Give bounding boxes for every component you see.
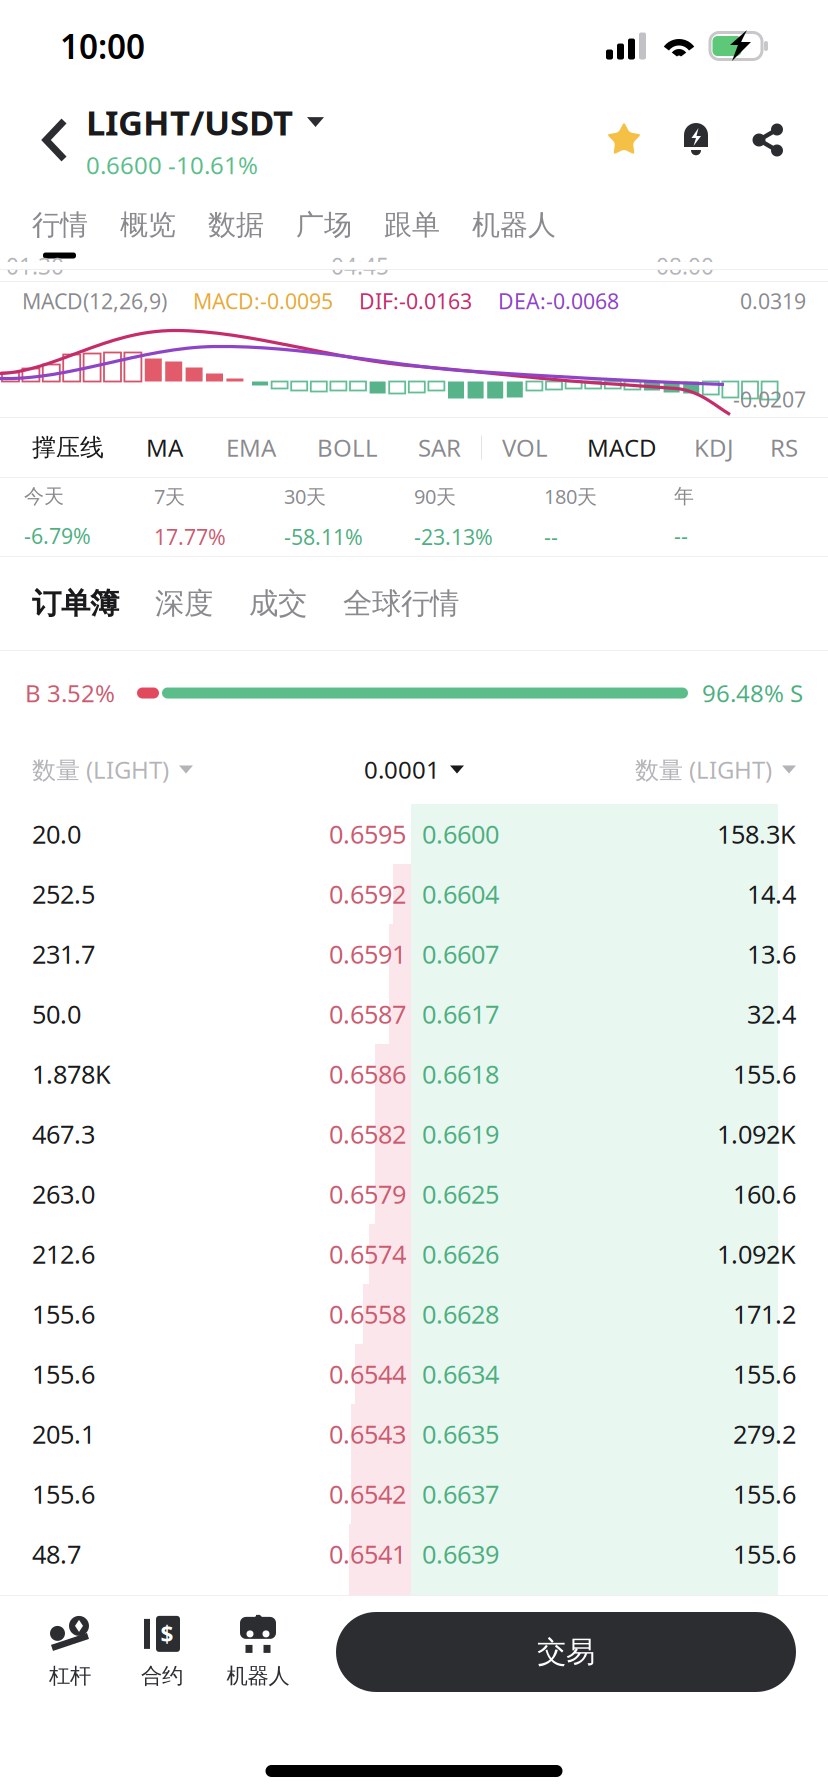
staticText: -58.11% xyxy=(284,523,363,551)
button[interactable]: 成交 xyxy=(231,557,325,650)
button[interactable]: 概览 xyxy=(104,188,192,262)
staticText: $ xyxy=(160,1619,173,1649)
staticText: EMA xyxy=(226,432,276,463)
staticText: 年 xyxy=(674,484,694,509)
staticText: 0.6628 xyxy=(422,1297,499,1331)
button[interactable]: KDJ xyxy=(676,432,752,463)
staticText: 231.7 xyxy=(32,937,95,971)
staticText: MACD(12,26,9) xyxy=(22,287,167,315)
staticText: 1.878K xyxy=(32,1057,111,1091)
button[interactable]: 交易 xyxy=(336,1612,796,1692)
staticText: 机器人 xyxy=(472,208,556,242)
staticText: RS xyxy=(770,432,798,463)
staticText: 0.6626 xyxy=(422,1237,499,1271)
staticText: -- xyxy=(674,522,688,550)
button[interactable]: 数量 (LIGHT) xyxy=(32,754,193,785)
staticText: 概览 xyxy=(120,208,176,242)
staticText: 0.6574 xyxy=(329,1237,406,1271)
button[interactable]: 0.0001 xyxy=(364,754,464,785)
staticText: 0.0319 xyxy=(740,287,806,315)
staticText: 机器人 xyxy=(226,1663,289,1689)
staticText: 0.6600 -10.61% xyxy=(86,149,258,181)
staticText: 155.6 xyxy=(32,1357,95,1391)
staticText: 90天 xyxy=(414,483,456,510)
staticText: 20.0 xyxy=(32,817,81,851)
staticText: 14.4 xyxy=(747,877,796,911)
staticText: -- xyxy=(544,523,558,551)
button[interactable]: RS xyxy=(752,432,816,463)
button[interactable]: MA xyxy=(124,432,205,463)
staticText: 广场 xyxy=(296,208,352,242)
staticText: 0.6579 xyxy=(329,1177,406,1211)
button[interactable]: 深度 xyxy=(137,557,231,650)
staticText: -23.13% xyxy=(414,523,493,551)
staticText: 0.6544 xyxy=(329,1357,406,1391)
button[interactable]: 数量 (LIGHT) xyxy=(635,754,796,785)
staticText: 1.092K xyxy=(717,1237,796,1271)
button[interactable]: Favorite xyxy=(588,104,660,176)
button[interactable]: Price alert xyxy=(660,104,732,176)
staticText: 180天 xyxy=(544,483,597,510)
button[interactable]: 数据 xyxy=(192,188,280,262)
button[interactable]: BOLL xyxy=(297,432,398,463)
staticText: 158.3K xyxy=(717,817,796,851)
staticText: 155.6 xyxy=(32,1297,95,1331)
staticText: 0.6542 xyxy=(329,1477,406,1511)
staticText: LIGHT/USDT xyxy=(86,99,293,145)
staticText: 171.2 xyxy=(733,1297,796,1331)
staticText: 深度 xyxy=(155,585,213,621)
staticText: 0.6617 xyxy=(422,997,499,1031)
staticText: 0.6618 xyxy=(422,1057,499,1091)
staticText: DIF:-0.0163 xyxy=(359,287,472,315)
staticText: 155.6 xyxy=(733,1477,796,1511)
button[interactable]: 广场 xyxy=(280,188,368,262)
staticText: 杠杆 xyxy=(49,1663,91,1689)
staticText: 50.0 xyxy=(32,997,81,1031)
staticText: 48.7 xyxy=(32,1537,81,1571)
button[interactable]: EMA xyxy=(205,432,297,463)
staticText: 30天 xyxy=(284,483,326,510)
staticText: 0.6625 xyxy=(422,1177,499,1211)
button[interactable]: VOL xyxy=(482,432,568,463)
staticText: 13.6 xyxy=(747,937,796,971)
staticText: 212.6 xyxy=(32,1237,95,1271)
staticText: 0.6604 xyxy=(422,877,499,911)
button[interactable]: 撑压线 xyxy=(12,433,124,462)
staticText: 撑压线 xyxy=(32,433,104,462)
staticText: 订单簿 xyxy=(32,585,119,621)
staticText: 155.6 xyxy=(32,1477,95,1511)
button[interactable]: MACD xyxy=(568,432,676,463)
staticText: 10:00 xyxy=(60,24,145,68)
staticText: 160.6 xyxy=(733,1177,796,1211)
button[interactable]: 订单簿 xyxy=(14,557,137,650)
staticText: 数量 (LIGHT) xyxy=(635,754,772,785)
staticText: 0.6639 xyxy=(422,1537,499,1571)
button[interactable]: SAR xyxy=(398,432,481,463)
staticText: -6.79% xyxy=(24,522,91,550)
staticText: 0.6595 xyxy=(329,817,406,851)
button[interactable]: 跟单 xyxy=(368,188,456,262)
button[interactable]: 全球行情 xyxy=(325,557,477,650)
button[interactable]: 行情 xyxy=(16,188,104,262)
button[interactable]: 机器人 xyxy=(456,188,572,262)
staticText: 32.4 xyxy=(747,997,796,1031)
staticText: 交易 xyxy=(537,1634,595,1670)
staticText: BOLL xyxy=(317,432,378,463)
staticText: B 3.52% xyxy=(25,677,115,709)
staticText: 今天 xyxy=(24,484,64,509)
button[interactable]: 杠杆 xyxy=(24,1604,116,1700)
button[interactable]: Share xyxy=(732,104,804,176)
staticText: 0.6592 xyxy=(329,877,406,911)
staticText: 0.6586 xyxy=(329,1057,406,1091)
staticText: 0.6558 xyxy=(329,1297,406,1331)
staticText: 155.6 xyxy=(733,1057,796,1091)
staticText: 04:45 xyxy=(331,251,389,281)
staticText: 279.2 xyxy=(733,1417,796,1451)
button[interactable]: Back xyxy=(24,100,86,180)
staticText: VOL xyxy=(502,432,548,463)
staticText: 155.6 xyxy=(733,1357,796,1391)
staticText: 17.77% xyxy=(154,523,226,551)
button[interactable]: $ xyxy=(116,1604,208,1700)
button[interactable]: 机器人 xyxy=(208,1604,308,1700)
staticText: 0.0001 xyxy=(364,754,440,785)
